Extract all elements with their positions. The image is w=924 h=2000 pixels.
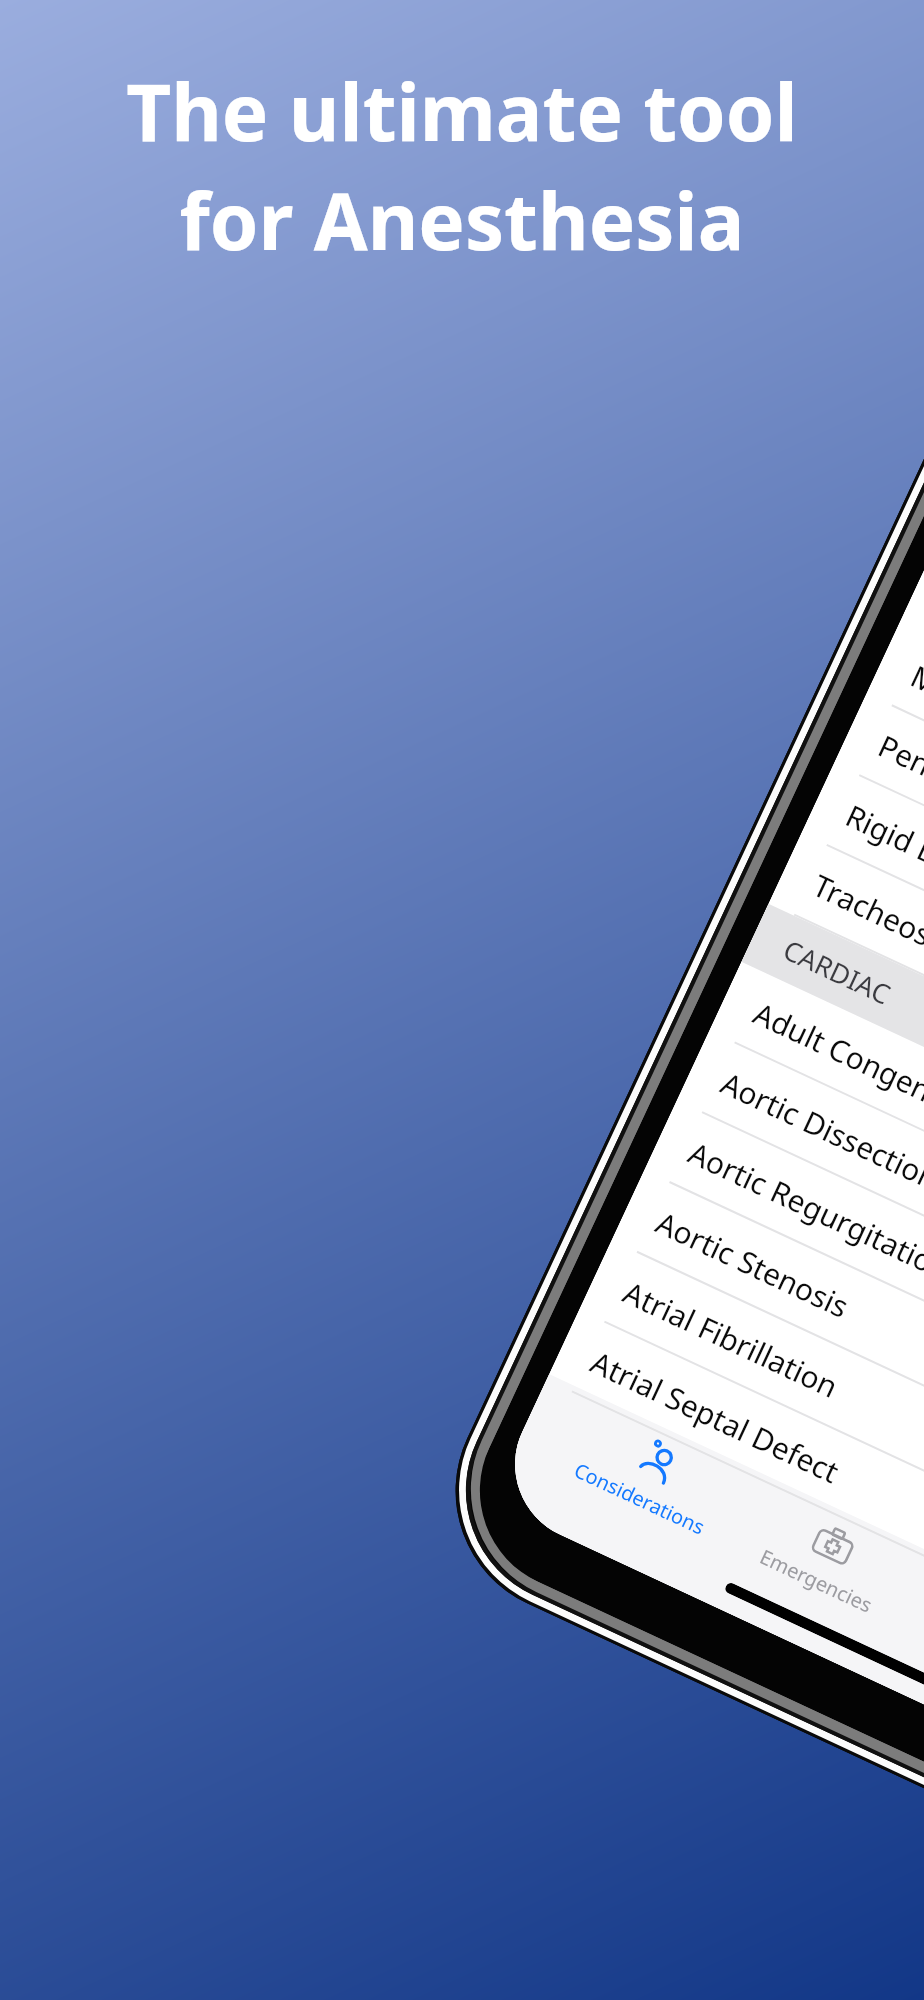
button[interactable]: Penetrating Eye Injury xyxy=(833,694,924,1073)
button[interactable]: Adult Congenital xyxy=(709,962,924,1341)
button[interactable]: Rigid Bronchoscopy xyxy=(801,764,924,1143)
button[interactable]: Guidelines xyxy=(923,1566,924,1688)
staticText: Atrial Fibrillation xyxy=(617,1271,845,1407)
other: Emergencies xyxy=(804,1513,865,1574)
staticText: Rigid Bronchoscopy xyxy=(839,795,924,949)
button[interactable]: Lung Transplant xyxy=(899,555,924,934)
button[interactable]: Atrial Fibrillation xyxy=(579,1241,924,1620)
staticText: Aortic Regurgitation xyxy=(682,1132,924,1290)
staticText: Penetrating Eye Injury xyxy=(872,725,924,894)
staticText: Considerations xyxy=(570,1456,709,1540)
button[interactable]: Aortic Dissection xyxy=(676,1031,924,1411)
other: Considerations xyxy=(627,1430,688,1492)
button[interactable]: Atrial Septal Defect xyxy=(546,1311,924,1690)
button[interactable]: Mediastinoscopy xyxy=(866,625,924,1004)
staticText: Aortic Dissection xyxy=(715,1062,924,1199)
staticText: CARDIAC xyxy=(778,931,897,1012)
staticText: Adult Congenital xyxy=(747,992,924,1129)
button[interactable]: Considerations xyxy=(570,1401,735,1540)
button[interactable]: Aortic Regurgitation xyxy=(644,1101,924,1480)
staticText: Mediastinoscopy xyxy=(904,655,924,792)
staticText: The ultimate tool for Anesthesia xyxy=(126,58,798,273)
staticText: Atrial Septal Defect xyxy=(584,1341,846,1492)
staticText: Emergencies xyxy=(756,1543,877,1619)
button[interactable]: Emergencies xyxy=(756,1488,903,1619)
staticText: Guidelines xyxy=(923,1621,924,1688)
staticText: Aortic Stenosis xyxy=(650,1202,855,1327)
staticText: Tracheostomy xyxy=(807,865,924,986)
button[interactable]: Tracheostomy xyxy=(768,834,924,1213)
button[interactable]: Aortic Stenosis xyxy=(611,1171,924,1550)
